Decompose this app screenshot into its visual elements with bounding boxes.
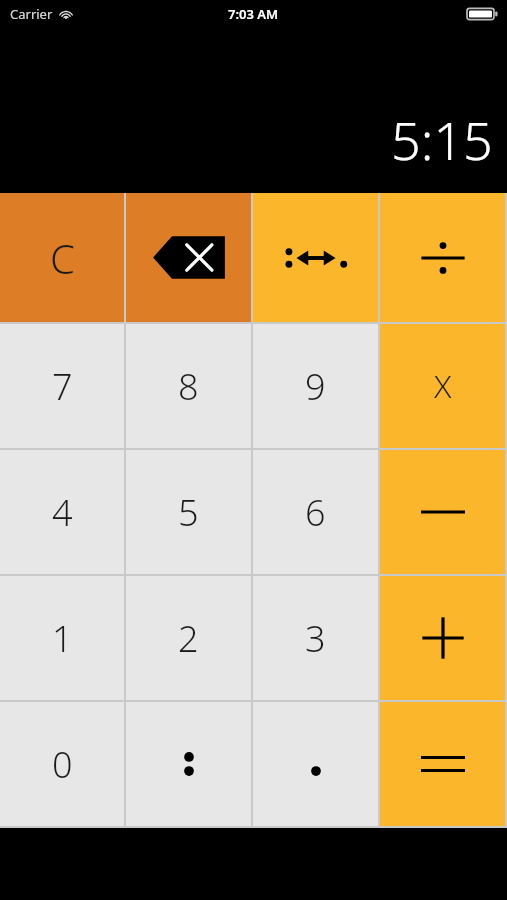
button[interactable]: Subtract: [380, 450, 505, 574]
button[interactable]: Colon: [126, 702, 251, 826]
staticText: 7:03 AM: [228, 5, 279, 23]
button[interactable]: Backspace: [126, 193, 251, 322]
staticText: X: [434, 364, 452, 408]
button[interactable]: Clear: [0, 193, 124, 322]
button[interactable]: Decimal point: [253, 702, 378, 826]
button[interactable]: 7: [0, 324, 124, 448]
button[interactable]: Swap time format: [253, 193, 378, 322]
staticText: 5:15: [391, 104, 493, 175]
staticText: 7: [52, 362, 73, 411]
button[interactable]: 2: [126, 576, 251, 700]
staticText: Carrier: [10, 5, 53, 23]
staticText: C: [50, 231, 75, 285]
button[interactable]: Add: [380, 576, 505, 700]
button[interactable]: Divide: [380, 193, 505, 322]
button[interactable]: 6: [253, 450, 378, 574]
staticText: 8: [178, 362, 199, 411]
button[interactable]: 4: [0, 450, 124, 574]
staticText: 0: [52, 740, 73, 789]
staticText: 3: [305, 614, 326, 663]
staticText: 1: [52, 614, 73, 663]
button[interactable]: 8: [126, 324, 251, 448]
staticText: 5: [178, 488, 199, 537]
button[interactable]: Equals: [380, 702, 505, 826]
staticText: 4: [52, 488, 73, 537]
button[interactable]: 5: [126, 450, 251, 574]
button[interactable]: 1: [0, 576, 124, 700]
button[interactable]: Multiply: [380, 324, 505, 448]
button[interactable]: 3: [253, 576, 378, 700]
staticText: 2: [178, 614, 199, 663]
button[interactable]: 0: [0, 702, 124, 826]
button[interactable]: 9: [253, 324, 378, 448]
staticText: 6: [305, 488, 326, 537]
staticText: 9: [305, 362, 326, 411]
